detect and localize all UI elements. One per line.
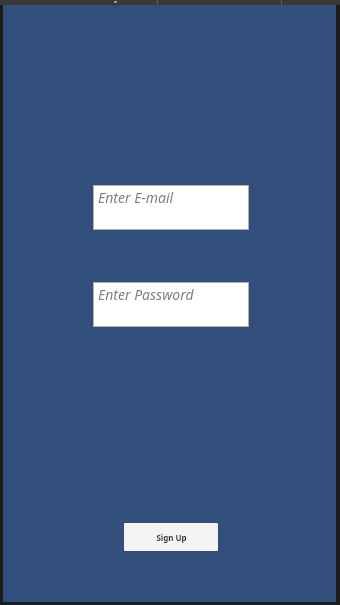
button[interactable]: Enter E-mail bbox=[93, 185, 249, 230]
staticText: Enter Password bbox=[98, 285, 194, 304]
staticText: Enter E-mail bbox=[98, 188, 174, 207]
button[interactable]: Sign Up bbox=[124, 523, 218, 551]
button[interactable]: Enter Password bbox=[93, 282, 249, 327]
staticText: Sign Up bbox=[156, 532, 187, 543]
